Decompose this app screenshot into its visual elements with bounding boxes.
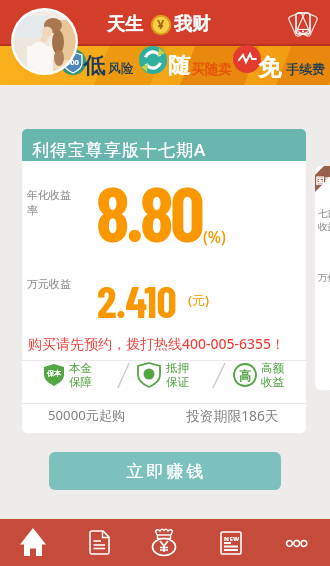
staticText: 万元收益: [27, 277, 71, 291]
staticText: 国泰: [316, 176, 330, 187]
staticText: 天生: [107, 13, 143, 36]
staticText: 50000元起购: [48, 406, 126, 424]
staticText: 8.80: [96, 166, 202, 257]
staticText: 高额: [261, 361, 284, 375]
staticText: 保本: [47, 369, 61, 378]
staticText: 率: [27, 203, 38, 217]
staticText: 低: [83, 52, 105, 80]
staticText: 本金: [69, 361, 92, 375]
staticText: 万份: [318, 272, 330, 284]
staticText: 利得宝尊享版十七期A: [32, 138, 207, 161]
staticText: 我财: [174, 13, 210, 36]
staticText: (%): [203, 226, 226, 247]
button[interactable]: [132, 519, 198, 566]
staticText: 七日: [318, 208, 330, 220]
staticText: 购买请先预约，拨打热线400-005-6355！: [28, 334, 286, 353]
staticText: 保证: [166, 375, 189, 389]
staticText: 2.410: [97, 273, 177, 326]
button[interactable]: [264, 519, 330, 566]
staticText: 收益: [261, 375, 284, 389]
staticText: 高: [239, 368, 251, 383]
staticText: 投资期限186天: [186, 406, 279, 425]
staticText: 抵押: [166, 361, 189, 375]
staticText: 随: [168, 52, 190, 80]
button[interactable]: [66, 519, 132, 566]
staticText: 年化收益: [27, 188, 71, 202]
staticText: 收益: [318, 221, 330, 233]
staticText: 手续费: [286, 61, 325, 77]
staticText: 100: [66, 57, 79, 67]
staticText: (元): [188, 291, 210, 309]
staticText: 风险: [108, 61, 133, 77]
staticText: 立即赚钱: [125, 461, 205, 482]
staticText: 免: [258, 53, 281, 82]
staticText: 买随卖: [191, 61, 232, 78]
button[interactable]: [0, 519, 66, 566]
button[interactable]: 立即赚钱: [49, 452, 281, 490]
staticText: ¥: [157, 15, 165, 33]
button[interactable]: [283, 6, 323, 42]
staticText: NEW: [224, 535, 240, 543]
staticText: 保障: [69, 375, 92, 389]
button[interactable]: NEW: [198, 519, 264, 566]
button[interactable]: [22, 129, 306, 433]
